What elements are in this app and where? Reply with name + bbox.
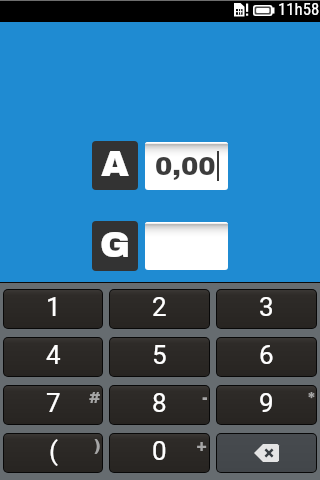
staticText: 9 [259,388,274,418]
staticText: * [308,388,315,406]
button[interactable]: 9 [217,386,316,424]
button[interactable]: 3 [217,290,316,328]
button[interactable]: 2 [110,290,209,328]
staticText: A [101,144,130,183]
staticText: + [196,436,208,454]
staticText: 2 [152,292,167,322]
staticText: 6 [259,340,274,370]
button[interactable]: 6 [217,338,316,376]
button[interactable]: G [92,221,138,271]
staticText: 0,00 [155,152,216,180]
staticText: - [202,388,208,406]
staticText: G [100,225,130,264]
button[interactable]: 0,00 [145,142,228,190]
button[interactable]: 4 [4,338,102,376]
staticText: # [89,388,101,406]
staticText: 1 [46,292,61,322]
button[interactable]: 7 [4,386,102,424]
button[interactable]: ( [4,434,102,472]
staticText: 5 [152,340,167,370]
staticText: 4 [46,340,61,370]
staticText: 3 [259,292,274,322]
button[interactable]: 1 [4,290,102,328]
button[interactable]: 5 [110,338,209,376]
staticText: ( [49,436,58,466]
staticText: 8 [152,388,167,418]
staticText: 0 [152,436,167,466]
button[interactable]: A [92,141,138,190]
button[interactable] [145,222,228,270]
button[interactable]: 0 [110,434,209,472]
staticText: 11h58 [278,0,320,19]
button[interactable]: Backspace [217,434,316,472]
staticText: ) [94,436,101,454]
staticText: 7 [46,388,61,418]
button[interactable]: 8 [110,386,209,424]
